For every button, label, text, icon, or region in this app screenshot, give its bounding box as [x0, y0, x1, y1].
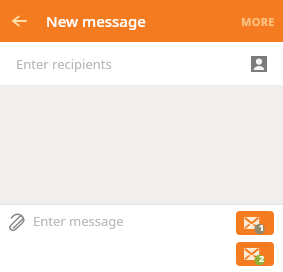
button[interactable]: Send message 2 [236, 242, 274, 266]
staticText: 2 [259, 252, 265, 264]
staticText: Enter recipients [16, 55, 112, 73]
staticText: Enter message [33, 212, 124, 230]
button[interactable]: Add contacts [249, 54, 269, 74]
button[interactable]: Send message 1 [236, 211, 274, 235]
button[interactable]: MORE [232, 6, 283, 37]
button[interactable]: Attach [6, 211, 28, 233]
staticText: New message [46, 11, 146, 31]
staticText: MORE [241, 14, 275, 29]
staticText: 1 [259, 221, 265, 233]
button[interactable]: Back [2, 4, 36, 38]
